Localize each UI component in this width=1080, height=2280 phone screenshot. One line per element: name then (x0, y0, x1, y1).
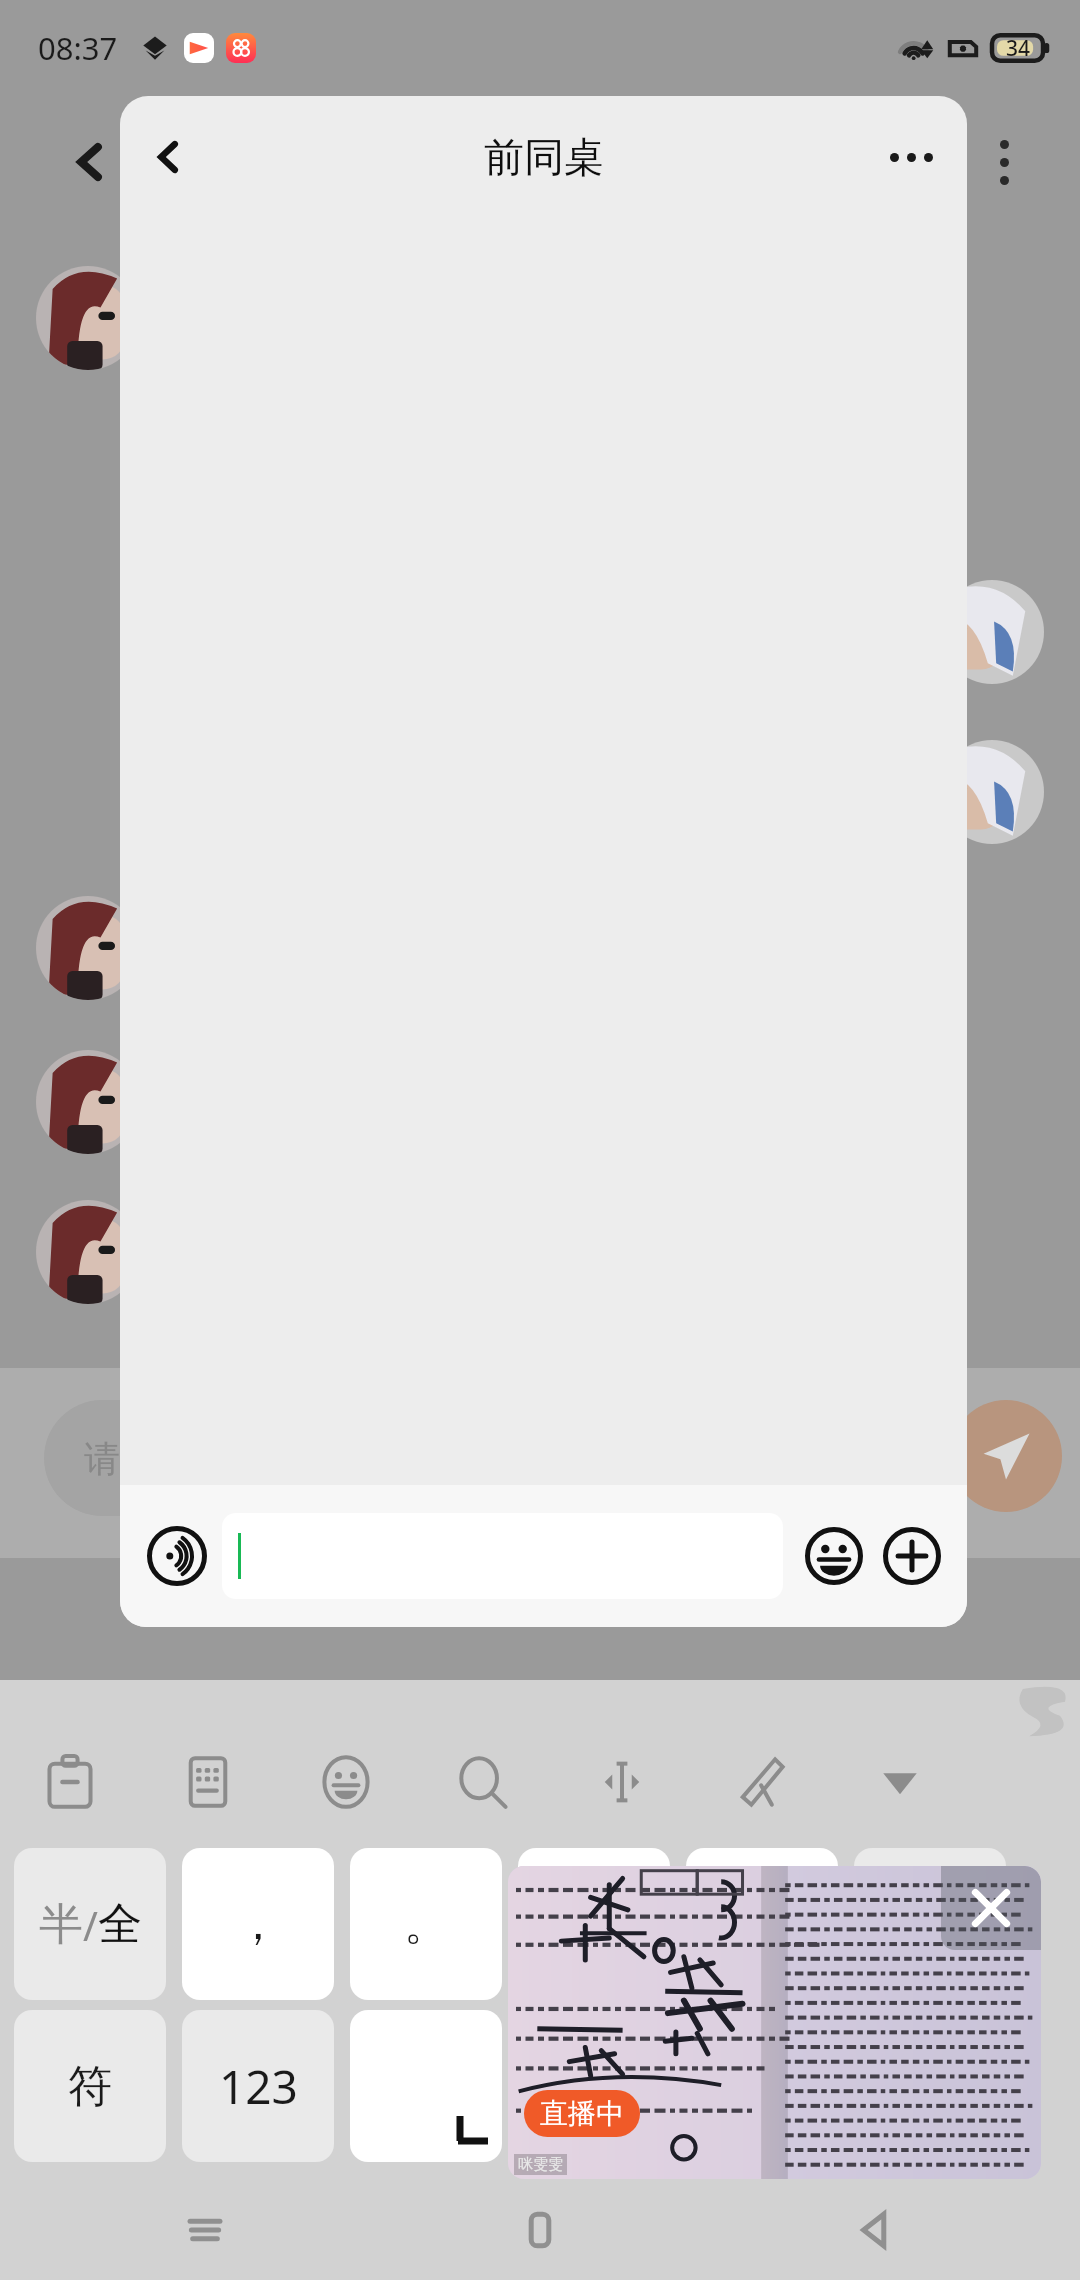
staticText: ， (236, 1897, 280, 1952)
button[interactable]: Home (485, 2180, 595, 2280)
button[interactable]: Handwriting (704, 1726, 816, 1838)
staticText: 08:37 (38, 27, 118, 69)
button[interactable]: Emoji (290, 1726, 402, 1838)
button[interactable]: Collapse keyboard (844, 1726, 956, 1838)
button[interactable]: Emoji (797, 1519, 871, 1593)
staticText: 34 (1006, 34, 1031, 63)
button[interactable]: 半 (14, 1848, 166, 2000)
button[interactable] (854, 2010, 1006, 2162)
staticText: 请输入 (84, 1436, 192, 1481)
staticText: 全 (98, 1897, 142, 1952)
staticText: 直播中 (540, 2096, 624, 2131)
button[interactable]: More options (873, 119, 949, 195)
staticText: 半 (39, 1897, 83, 1952)
button[interactable]: Recent apps (150, 2180, 260, 2280)
button[interactable] (222, 1513, 783, 1599)
button[interactable]: 。 (350, 1848, 502, 2000)
button[interactable]: Clipboard (14, 1726, 126, 1838)
button[interactable]: Voice message (138, 1517, 216, 1595)
button[interactable]: More functions (875, 1519, 949, 1593)
button[interactable] (518, 1848, 670, 2000)
button[interactable]: Back (132, 121, 204, 193)
staticText: 123 (219, 2055, 298, 2118)
button[interactable]: Search (428, 1726, 540, 1838)
staticText: 前同桌 (484, 132, 604, 182)
button[interactable]: Keyboard layout (152, 1726, 264, 1838)
button[interactable] (686, 2010, 838, 2162)
button[interactable]: Cursor move (566, 1726, 678, 1838)
button[interactable] (686, 1848, 838, 2000)
staticText: 咪雯雯 (518, 2155, 563, 2174)
button[interactable] (518, 2010, 670, 2162)
button[interactable] (350, 2010, 502, 2162)
button[interactable]: ， (182, 1848, 334, 2000)
staticText: / (83, 1898, 98, 1952)
button[interactable]: Close (941, 1866, 1041, 1950)
button[interactable] (854, 1848, 1006, 2000)
button[interactable]: 符 (14, 2010, 166, 2162)
staticText: 符 (68, 2059, 112, 2114)
button[interactable]: 123 (182, 2010, 334, 2162)
staticText: 。 (404, 1897, 448, 1952)
button[interactable]: Back (820, 2180, 930, 2280)
